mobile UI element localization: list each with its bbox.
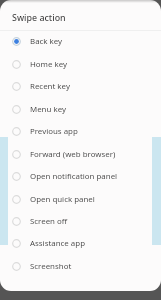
staticText: Assistance app [30,238,85,249]
button[interactable]: Previous app [0,120,161,142]
button[interactable]: Menu key [0,98,161,120]
staticText: Previous app [30,126,78,137]
staticText: Recent key [30,81,70,92]
button[interactable]: Screen off [0,210,161,232]
button[interactable]: Assistance app [0,232,161,254]
staticText: Screenshot [30,261,72,272]
staticText: Open notification panel [30,171,118,182]
staticText: Swipe action [12,11,66,23]
staticText: Open quick panel [30,194,95,205]
button[interactable]: Back key [0,30,161,52]
staticText: Screen off [30,216,68,227]
button[interactable]: Recent key [0,75,161,97]
staticText: Back key [30,36,63,47]
staticText: Forward (web browser) [30,149,116,160]
staticText: Home key [30,59,68,70]
button[interactable]: Home key [0,53,161,75]
button[interactable]: Open notification panel [0,165,161,187]
staticText: Menu key [30,104,66,115]
button[interactable]: Forward (web browser) [0,143,161,165]
button[interactable]: Screenshot [0,255,161,277]
button[interactable]: Open quick panel [0,188,161,210]
